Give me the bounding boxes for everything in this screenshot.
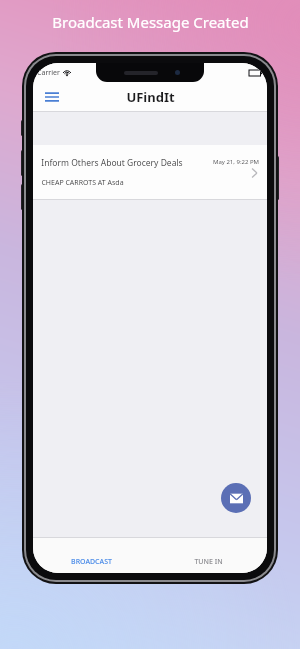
staticText: Carrier — [37, 68, 60, 78]
button[interactable]: Compose broadcast message — [221, 483, 251, 513]
button[interactable]: BROADCAST — [33, 537, 150, 573]
button[interactable]: TUNE IN — [150, 537, 267, 573]
button[interactable]: Menu — [41, 86, 63, 108]
staticText: BROADCAST — [71, 557, 112, 567]
staticText: CHEAP CARROTS AT Asda — [41, 178, 124, 188]
staticText: May 21, 9:22 PM — [213, 158, 259, 166]
staticText: UFindIt — [126, 88, 175, 106]
staticText: Broadcast Message Created — [52, 12, 249, 32]
staticText: Inform Others About Grocery Deals — [41, 157, 183, 169]
staticText: TUNE IN — [194, 557, 223, 567]
button[interactable]: Inform Others About Grocery Deals — [33, 145, 267, 200]
